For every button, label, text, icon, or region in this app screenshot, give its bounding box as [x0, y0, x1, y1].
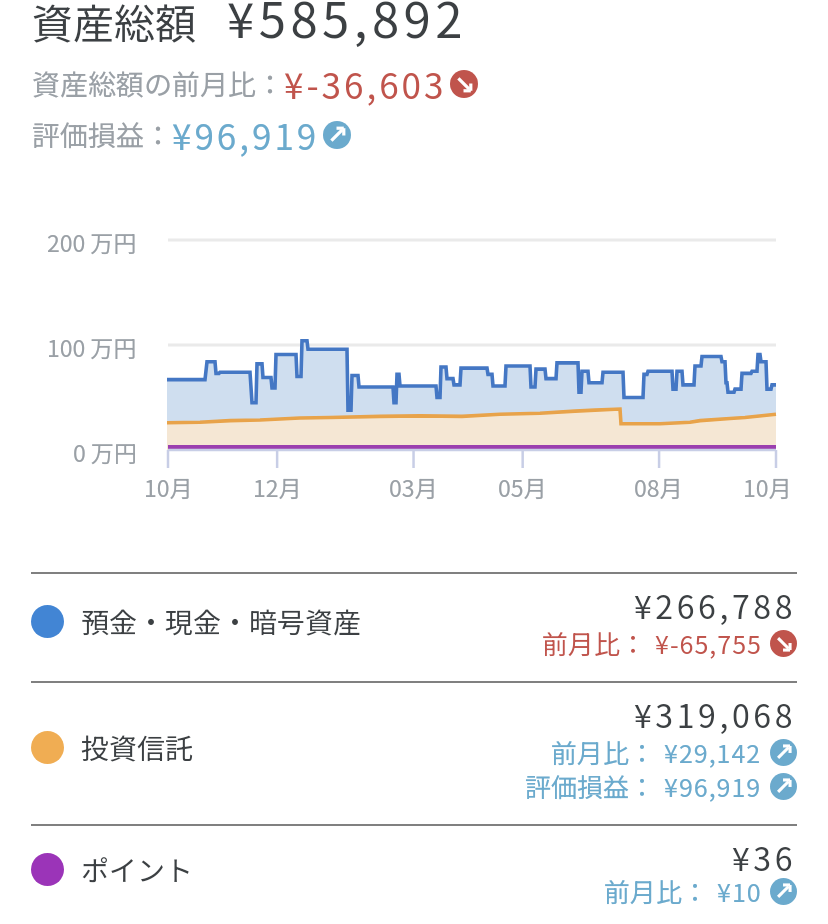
other: Increase — [770, 739, 797, 766]
staticText: ¥96,919 — [664, 768, 762, 804]
other: Decrease — [770, 630, 797, 657]
staticText: 0 万円 — [73, 435, 137, 468]
staticText: 前月比： — [542, 624, 647, 662]
staticText: 05月 — [498, 470, 547, 503]
staticText: ¥585,892 — [227, 0, 467, 52]
staticText: 08月 — [634, 470, 683, 503]
staticText: 10月 — [743, 470, 792, 503]
staticText: 前月比： — [551, 733, 656, 771]
other: Increase — [770, 878, 797, 905]
button[interactable]: 投資信託 — [0, 683, 828, 824]
other: Decrease — [450, 70, 478, 98]
button[interactable]: 預金・現金・暗号資産 — [0, 574, 828, 681]
staticText: 前月比： — [604, 872, 709, 910]
staticText: 評価損益： — [525, 767, 656, 805]
other: Increase — [770, 773, 797, 800]
button[interactable]: ポイント — [0, 826, 828, 924]
staticText: ¥266,788 — [634, 582, 797, 628]
staticText: 12月 — [253, 470, 302, 503]
staticText: 投資信託 — [81, 727, 194, 768]
staticText: ¥-65,755 — [655, 625, 762, 661]
staticText: ¥-36,603 — [284, 58, 447, 109]
staticText: ¥96,919 — [172, 109, 320, 160]
staticText: ¥36 — [732, 834, 797, 880]
staticText: 100 万円 — [47, 330, 137, 363]
staticText: 預金・現金・暗号資産 — [81, 601, 362, 642]
other: Increase — [323, 121, 351, 149]
staticText: ¥10 — [717, 873, 762, 909]
staticText: ポイント — [81, 849, 194, 890]
staticText: 10月 — [144, 470, 193, 503]
staticText: 03月 — [389, 470, 438, 503]
staticText: 200 万円 — [47, 225, 137, 258]
staticText: 資産総額の前月比： — [32, 63, 285, 104]
staticText: 評価損益： — [32, 114, 173, 155]
staticText: ¥29,142 — [664, 734, 762, 770]
staticText: 資産総額 — [32, 0, 196, 50]
staticText: ¥319,068 — [634, 691, 797, 737]
